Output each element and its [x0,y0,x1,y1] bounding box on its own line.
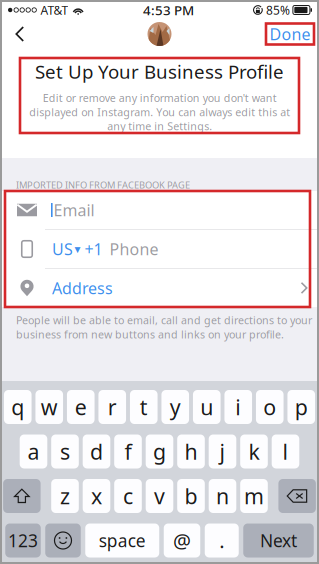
button[interactable]: i [224,390,252,424]
staticText: y [170,393,181,421]
staticText: space [99,529,146,552]
staticText: 85% [266,2,290,18]
staticText: r [108,393,117,421]
button[interactable]: Back [0,20,41,48]
staticText: k [248,437,259,466]
button[interactable]: . [205,523,239,557]
staticText: Email [54,199,95,221]
staticText: . [219,527,224,554]
button[interactable]: Done [266,23,319,44]
button[interactable]: t [130,390,157,424]
button[interactable]: n [209,479,236,513]
staticText: g [153,437,166,466]
staticText: Address [52,277,113,299]
staticText: a [27,437,39,466]
button[interactable]: y [161,390,189,424]
button[interactable]: o [256,390,283,424]
button[interactable]: v [146,479,173,513]
staticText: x [91,482,102,510]
staticText: People will be able to email, call and g… [16,313,312,341]
staticText: p [295,393,308,421]
staticText: +1 [84,238,102,260]
staticText: d [90,437,103,466]
staticText: i [235,393,241,421]
button[interactable]: u [193,390,220,424]
button[interactable]: j [209,434,236,468]
staticText: u [200,393,213,421]
staticText: v [154,482,165,510]
button[interactable]: f [114,434,142,468]
staticText: IMPORTED INFO FROM FACEBOOK PAGE [16,179,190,191]
button[interactable]: Address [0,269,319,307]
button[interactable]: p [287,390,315,424]
button[interactable]: e [67,390,94,424]
button[interactable]: space [85,523,159,557]
staticText: c [123,482,133,510]
button[interactable]: k [240,434,268,468]
staticText: ▾ [74,242,80,256]
button[interactable]: d [83,434,110,468]
staticText: 123 [8,529,38,552]
staticText: 4:53 PM [143,1,194,19]
button[interactable]: z [51,479,79,513]
staticText: q [11,393,24,421]
button[interactable]: s [51,434,79,468]
staticText: US [52,238,73,260]
button[interactable]: 123 [5,523,41,557]
staticText: z [60,482,70,510]
staticText: Edit or remove any information you don't… [29,91,290,133]
button[interactable]: Delete [278,479,316,513]
button[interactable]: a [20,434,47,468]
staticText: b [184,482,197,510]
staticText: f [124,437,131,466]
staticText: o [263,393,276,421]
staticText: m [244,482,264,510]
button[interactable]: Shift [3,479,41,513]
button[interactable]: r [98,390,126,424]
button[interactable]: x [83,479,110,513]
button[interactable]: Emoji [45,523,81,557]
button[interactable]: w [35,390,63,424]
staticText: h [184,437,197,466]
button[interactable]: m [240,479,268,513]
staticText: j [219,437,225,466]
button[interactable]: l [272,434,299,468]
staticText: t [140,393,148,421]
button[interactable]: @ [164,523,200,557]
staticText: e [75,393,87,421]
staticText: @ [173,527,191,554]
staticText: Set Up Your Business Profile [35,59,284,84]
staticText: w [41,393,58,421]
staticText: n [216,482,229,510]
staticText: AT&T [40,2,68,18]
staticText: Done [269,23,310,45]
button[interactable]: g [146,434,173,468]
button[interactable]: h [177,434,205,468]
button[interactable]: q [4,390,31,424]
button[interactable]: US [0,230,319,268]
staticText: Phone [109,238,158,260]
button[interactable]: Email [0,191,319,229]
staticText: l [282,437,288,466]
button[interactable]: Next [243,523,314,557]
staticText: Next [260,529,297,552]
button[interactable]: b [177,479,205,513]
staticText: s [60,437,70,466]
button[interactable]: c [114,479,142,513]
